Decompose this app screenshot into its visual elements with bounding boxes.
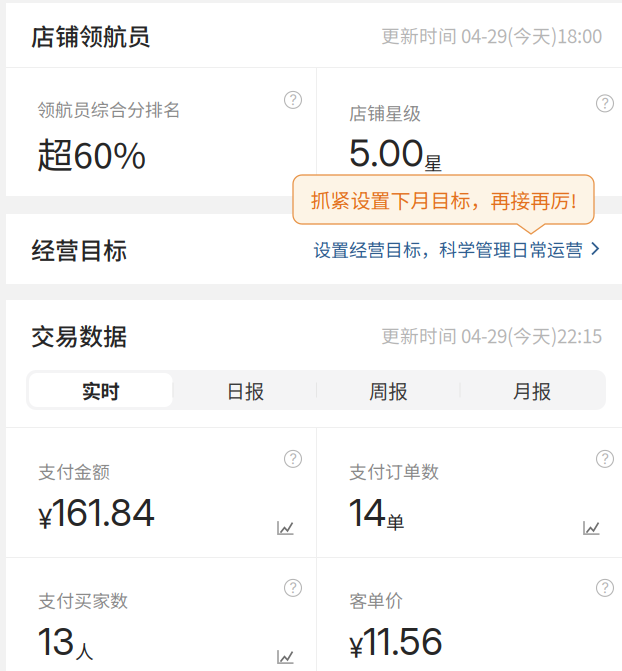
staticText: 抓紧设置下月目标，再接再厉! — [310, 185, 576, 214]
button[interactable]: 周报 — [317, 373, 459, 407]
staticText: 店铺星级 — [349, 99, 421, 125]
staticText: ? — [601, 579, 608, 597]
button[interactable]: 实时 — [29, 373, 172, 407]
button[interactable]: 领航员综合分排名 — [6, 69, 316, 195]
button[interactable]: 设置经营目标，科学管理日常运营 — [313, 236, 600, 262]
staticText: ? — [601, 450, 608, 468]
button[interactable]: 日报 — [173, 373, 316, 407]
staticText: 161.84 — [52, 490, 155, 535]
staticText: 星 — [424, 149, 443, 176]
staticText: 支付金额 — [38, 458, 110, 484]
staticText: ? — [289, 450, 296, 468]
staticText: 经营目标 — [31, 232, 127, 266]
staticText: 交易数据 — [31, 318, 127, 352]
staticText: 5.00 — [349, 130, 424, 176]
staticText: 14 — [349, 490, 386, 535]
button[interactable]: 月报 — [460, 373, 603, 407]
staticText: 更新时间 04-29(今天)18:00 — [381, 21, 602, 48]
staticText: 日报 — [226, 376, 264, 404]
staticText: 11.56 — [363, 619, 443, 664]
staticText: 超60% — [37, 127, 146, 179]
staticText: 单 — [386, 508, 405, 535]
button[interactable]: 客单价 — [317, 565, 622, 664]
button[interactable]: 支付金额 — [6, 436, 316, 549]
staticText: ? — [289, 579, 296, 597]
button[interactable]: 抓紧设置下月目标，再接再厉! — [293, 175, 594, 234]
staticText: ? — [601, 94, 608, 112]
staticText: ¥ — [38, 503, 52, 535]
staticText: 领航员综合分排名 — [37, 96, 181, 122]
staticText: 支付买家数 — [38, 587, 128, 613]
staticText: 周报 — [369, 376, 407, 404]
staticText: ? — [289, 91, 296, 109]
staticText: 支付订单数 — [349, 458, 439, 484]
staticText: 更新时间 04-29(今天)22:15 — [381, 321, 602, 348]
button[interactable]: 支付订单数 — [317, 436, 622, 549]
staticText: 店铺领航员 — [31, 18, 151, 52]
button[interactable]: 支付买家数 — [6, 565, 316, 664]
staticText: 客单价 — [349, 587, 403, 613]
staticText: ¥ — [349, 632, 363, 664]
staticText: 13 — [38, 619, 75, 664]
staticText: 设置经营目标，科学管理日常运营 — [313, 236, 583, 262]
staticText: 人 — [75, 637, 94, 664]
button[interactable]: 店铺星级 — [317, 72, 622, 192]
staticText: 实时 — [82, 376, 120, 404]
staticText: 月报 — [513, 376, 551, 404]
